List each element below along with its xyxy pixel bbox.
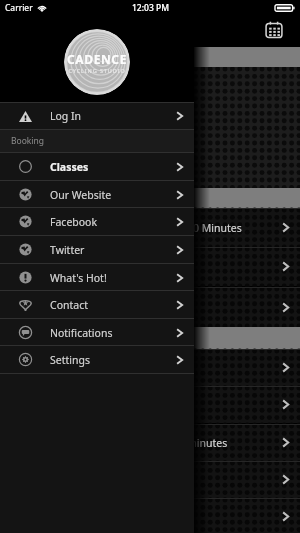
staticText: 60 Minutes <box>187 221 242 235</box>
button[interactable]: What's Hot! <box>0 264 194 291</box>
button[interactable]: minutes <box>0 424 300 461</box>
button[interactable]: 60 Minutes <box>0 208 300 247</box>
button[interactable] <box>0 349 300 386</box>
button[interactable]: Contact <box>0 291 194 318</box>
staticText: Carrier <box>5 2 33 14</box>
staticText: CYCLING STUDIO <box>68 67 126 74</box>
staticText: Notifications <box>50 326 113 340</box>
staticText: Classes <box>50 160 89 174</box>
staticText: Twitter <box>50 243 85 257</box>
button[interactable] <box>0 498 300 533</box>
staticText: Contact <box>50 298 88 312</box>
button[interactable] <box>0 386 300 423</box>
staticText: Booking <box>11 135 45 147</box>
staticText: Log In <box>50 109 82 123</box>
button[interactable]: Notifications <box>0 319 194 346</box>
button[interactable]: Facebook <box>0 208 194 235</box>
staticText: Our Website <box>50 188 112 202</box>
staticText: minutes <box>187 436 228 450</box>
button[interactable]: Calendar <box>265 21 283 39</box>
staticText: CADENCE <box>67 51 127 67</box>
button[interactable] <box>0 247 300 286</box>
button[interactable]: s <box>0 287 300 327</box>
button[interactable]: Settings <box>0 346 194 373</box>
staticText: What's Hot! <box>50 271 107 285</box>
staticText: 12:03 PM <box>132 2 169 14</box>
staticText: Facebook <box>50 215 98 229</box>
staticText: Settings <box>50 353 90 367</box>
button[interactable] <box>0 461 300 498</box>
button[interactable]: Classes <box>0 153 194 180</box>
button[interactable]: Log In <box>0 103 194 129</box>
button[interactable]: Twitter <box>0 236 194 263</box>
button[interactable]: Our Website <box>0 181 194 208</box>
